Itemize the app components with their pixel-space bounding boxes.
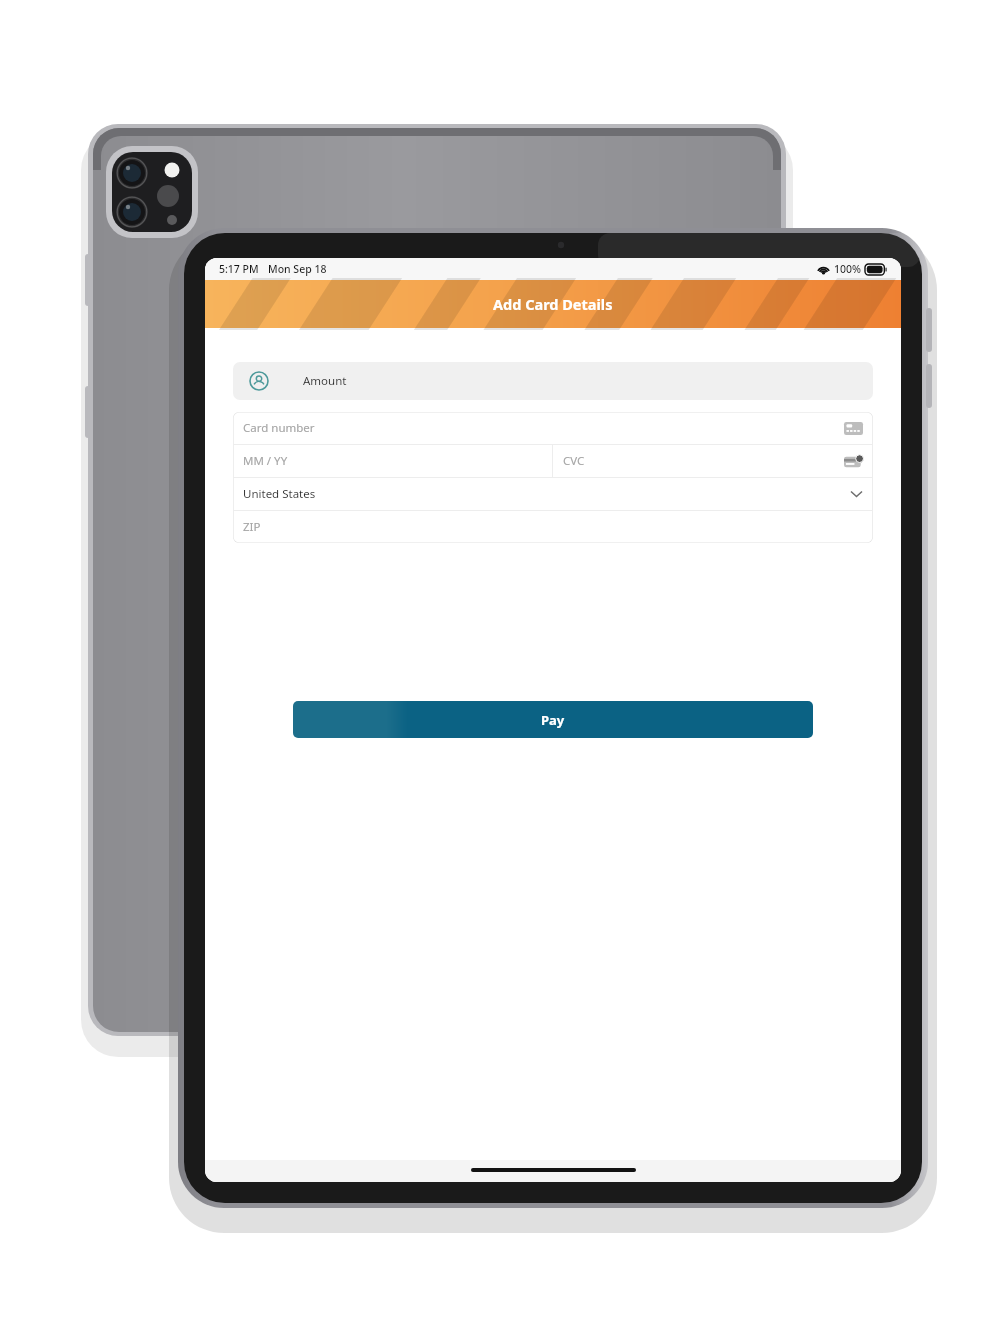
staticText: 5:17 PM bbox=[219, 262, 259, 276]
staticText: Card number bbox=[243, 420, 844, 436]
button[interactable]: Card number bbox=[233, 412, 873, 444]
staticText: ZIP bbox=[243, 519, 863, 535]
staticText: United States bbox=[243, 486, 850, 502]
staticText: Pay bbox=[541, 711, 565, 729]
button[interactable]: Pay bbox=[293, 701, 813, 738]
button[interactable]: MM / YY bbox=[233, 445, 552, 477]
other: Account bbox=[249, 371, 269, 391]
staticText: Add Card Details bbox=[493, 294, 613, 314]
other: Expand bbox=[850, 490, 863, 498]
staticText: MM / YY bbox=[243, 453, 288, 469]
button[interactable]: Account bbox=[233, 362, 873, 400]
staticText: 100% bbox=[834, 262, 861, 276]
button[interactable]: CVC bbox=[553, 445, 873, 477]
staticText: Mon Sep 18 bbox=[268, 262, 327, 276]
staticText: CVC bbox=[563, 453, 844, 469]
button[interactable]: United States bbox=[233, 478, 873, 510]
button[interactable]: ZIP bbox=[233, 511, 873, 543]
staticText: Amount bbox=[303, 373, 347, 389]
